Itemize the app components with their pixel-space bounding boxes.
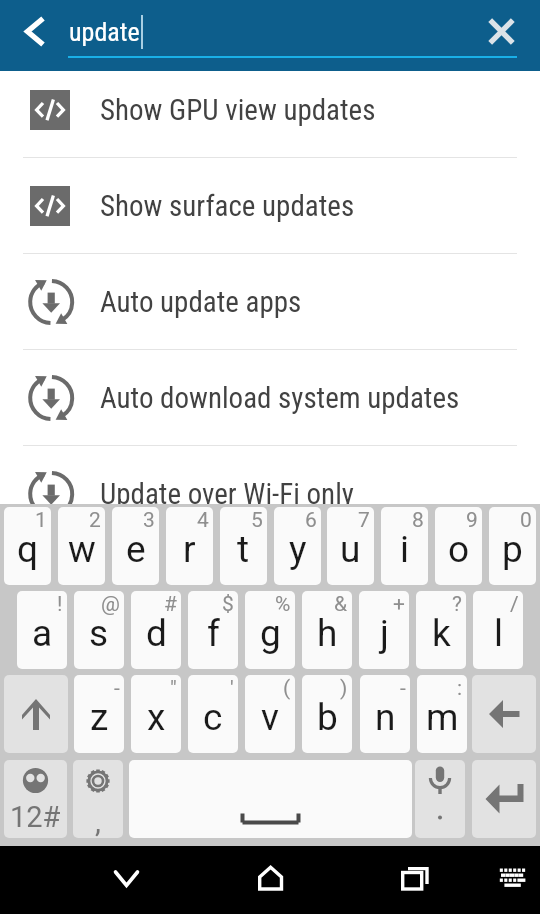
button[interactable]: 8 — [381, 507, 428, 585]
button[interactable]: 1 — [4, 507, 51, 585]
staticText: l — [494, 612, 503, 655]
button[interactable]: 7 — [327, 507, 374, 585]
staticText: k — [432, 612, 451, 655]
button[interactable]: 4 — [166, 507, 213, 585]
staticText: 7 — [358, 508, 370, 533]
button[interactable]: - — [74, 675, 124, 753]
staticText: ! — [57, 592, 63, 617]
button[interactable]: & — [302, 591, 352, 669]
staticText: j — [380, 612, 389, 655]
button[interactable]: : — [417, 675, 467, 753]
button[interactable]: voice input — [415, 760, 465, 838]
staticText: ? — [452, 592, 462, 617]
staticText: Auto update apps — [100, 285, 302, 319]
staticText: r — [183, 528, 196, 571]
staticText: f — [207, 612, 220, 655]
button[interactable]: @ — [74, 591, 124, 669]
button[interactable]: symbols — [4, 760, 67, 838]
button[interactable]: ) — [302, 675, 352, 753]
button[interactable]: # — [131, 591, 181, 669]
button[interactable]: enter — [472, 760, 536, 838]
button[interactable]: ! — [17, 591, 67, 669]
staticText: o — [448, 528, 470, 571]
button[interactable]: 5 — [220, 507, 267, 585]
button[interactable]: settings — [73, 760, 123, 838]
staticText: m — [426, 696, 459, 739]
staticText: i — [400, 528, 409, 571]
button[interactable]: Auto download system updates — [0, 350, 540, 446]
staticText: 9 — [466, 508, 478, 533]
button[interactable]: 3 — [112, 507, 159, 585]
button[interactable]: Update over Wi-Fi only — [0, 446, 540, 542]
staticText: ' — [230, 676, 234, 701]
staticText: : — [457, 676, 463, 701]
staticText: ) — [340, 676, 348, 701]
staticText: Show GPU view updates — [100, 93, 376, 127]
staticText: z — [90, 696, 109, 739]
staticText: & — [334, 592, 348, 617]
staticText: t — [237, 528, 250, 571]
staticText: " — [170, 676, 177, 701]
button[interactable]: Show surface updates — [0, 158, 540, 254]
staticText: e — [126, 528, 146, 571]
staticText: s — [89, 612, 109, 655]
staticText: $ — [222, 592, 234, 617]
button[interactable]: Recent apps — [382, 846, 442, 908]
staticText: y — [289, 528, 307, 571]
button[interactable]: ? — [416, 591, 466, 669]
button[interactable]: Navigate up — [4, 4, 60, 66]
staticText: 4 — [197, 508, 209, 533]
staticText: n — [375, 696, 396, 739]
staticText: q — [17, 528, 39, 571]
staticText: Update over Wi-Fi only — [100, 477, 354, 511]
staticText: d — [146, 612, 167, 655]
button[interactable]: $ — [188, 591, 238, 669]
button[interactable]: % — [245, 591, 295, 669]
staticText: p — [502, 528, 523, 571]
button[interactable]: Auto update apps — [0, 254, 540, 350]
button[interactable]: Show GPU view updates — [0, 62, 540, 158]
button[interactable]: + — [359, 591, 409, 669]
staticText: 5 — [251, 508, 263, 533]
staticText: - — [114, 676, 120, 701]
staticText: / — [510, 592, 519, 617]
button[interactable]: / — [473, 591, 523, 669]
button[interactable]: space — [129, 760, 412, 838]
staticText: 1 — [35, 508, 47, 533]
button[interactable]: - — [360, 675, 410, 753]
staticText: Auto download system updates — [100, 381, 460, 415]
staticText: 0 — [520, 508, 532, 533]
staticText: update — [69, 17, 140, 47]
staticText: b — [317, 696, 338, 739]
staticText: @ — [101, 592, 120, 617]
staticText: 12# — [10, 800, 61, 834]
button[interactable]: 6 — [274, 507, 321, 585]
staticText: h — [317, 612, 338, 655]
button[interactable]: 2 — [58, 507, 105, 585]
button[interactable]: Clear query — [473, 0, 530, 63]
staticText: g — [260, 612, 281, 655]
staticText: # — [164, 592, 177, 617]
staticText: 2 — [89, 508, 101, 533]
staticText: v — [261, 696, 279, 739]
button[interactable]: ' — [188, 675, 238, 753]
staticText: w — [68, 528, 96, 571]
staticText: u — [340, 528, 361, 571]
staticText: c — [203, 696, 223, 739]
button[interactable]: " — [131, 675, 181, 753]
button[interactable]: ( — [245, 675, 295, 753]
button[interactable]: 9 — [435, 507, 482, 585]
button[interactable]: 0 — [489, 507, 536, 585]
staticText: 3 — [143, 508, 155, 533]
staticText: , — [95, 804, 101, 838]
button[interactable]: Back — [96, 846, 156, 908]
button[interactable]: shift — [4, 675, 68, 753]
staticText: Show surface updates — [100, 189, 355, 223]
button[interactable]: Keyboard — [482, 846, 540, 908]
staticText: 6 — [305, 508, 317, 533]
button[interactable]: Home — [240, 846, 300, 908]
button[interactable]: backspace — [472, 675, 536, 753]
staticText: % — [275, 592, 291, 617]
staticText: ( — [283, 676, 291, 701]
staticText: a — [32, 612, 53, 655]
